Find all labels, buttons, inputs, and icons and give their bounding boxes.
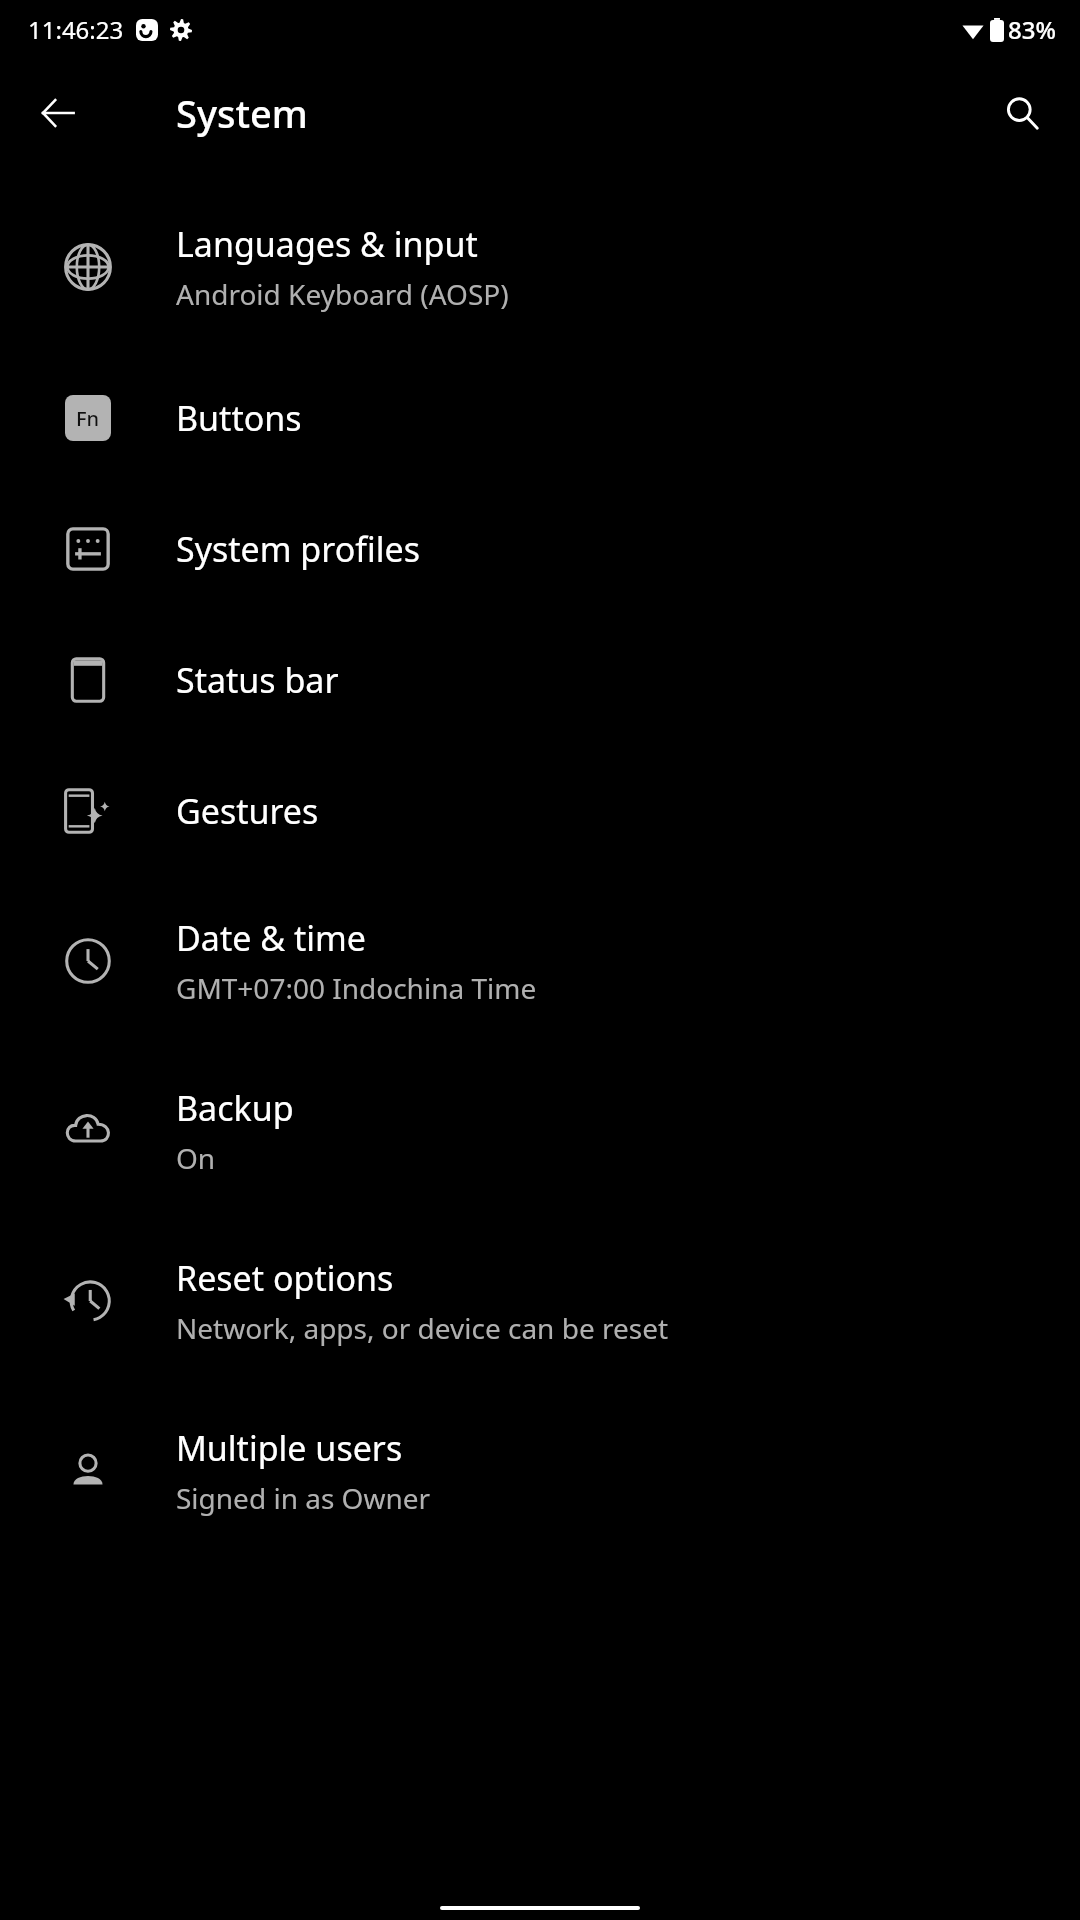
button[interactable]: System profiles xyxy=(0,483,1080,614)
staticText: Reset options xyxy=(176,1255,394,1301)
staticText: On xyxy=(176,1139,216,1177)
staticText: System xyxy=(176,87,308,139)
button[interactable]: Languages & input xyxy=(0,182,1080,352)
staticText: Fn xyxy=(76,405,100,432)
button[interactable]: Reset options xyxy=(0,1216,1080,1386)
staticText: Status bar xyxy=(176,657,339,703)
button[interactable]: Fn xyxy=(0,352,1080,483)
staticText: Multiple users xyxy=(176,1425,403,1471)
staticText: Buttons xyxy=(176,395,302,441)
button[interactable]: Search xyxy=(994,85,1050,141)
button[interactable]: Back xyxy=(30,85,86,141)
staticText: 11:46:23 xyxy=(28,13,124,46)
staticText: System profiles xyxy=(176,526,420,572)
staticText: Date & time xyxy=(176,915,366,961)
staticText: Android Keyboard (AOSP) xyxy=(176,275,509,313)
staticText: Network, apps, or device can be reset xyxy=(176,1309,669,1347)
staticText: Backup xyxy=(176,1085,294,1131)
button[interactable]: Date & time xyxy=(0,876,1080,1046)
button[interactable]: Status bar xyxy=(0,614,1080,745)
button[interactable]: Multiple users xyxy=(0,1386,1080,1556)
staticText: Languages & input xyxy=(176,221,478,267)
staticText: 83% xyxy=(1008,13,1056,46)
staticText: Signed in as Owner xyxy=(176,1479,431,1517)
button[interactable]: Backup xyxy=(0,1046,1080,1216)
staticText: GMT+07:00 Indochina Time xyxy=(176,969,537,1007)
staticText: Gestures xyxy=(176,788,319,834)
button[interactable]: Gestures xyxy=(0,745,1080,876)
